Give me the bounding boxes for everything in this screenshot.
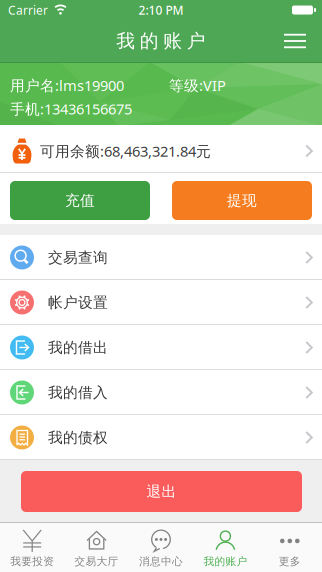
- button[interactable]: 我的债权: [0, 415, 322, 460]
- button[interactable]: 提现: [172, 181, 312, 220]
- staticText: 交易大厅: [75, 555, 119, 568]
- staticText: 充值: [65, 191, 95, 209]
- staticText: 用户名:lms19900: [10, 75, 124, 95]
- staticText: 我要投资: [10, 555, 54, 568]
- button[interactable]: 交易大厅: [64, 529, 129, 568]
- staticText: 我的借入: [48, 383, 108, 401]
- button[interactable]: 可用余额:68,463,321.84元: [0, 125, 322, 173]
- button[interactable]: 交易查询: [0, 235, 322, 280]
- staticText: Carrier: [8, 2, 48, 18]
- button[interactable]: 我的账户: [193, 529, 258, 568]
- button[interactable]: 我的借入: [0, 370, 322, 415]
- staticText: 手机:13436156675: [10, 99, 132, 118]
- button[interactable]: 我要投资: [0, 529, 64, 568]
- staticText: 退出: [146, 482, 176, 500]
- staticText: 我的账户: [116, 29, 206, 52]
- button[interactable]: 充值: [10, 181, 150, 220]
- button[interactable]: 帐户设置: [0, 280, 322, 325]
- staticText: 我的借出: [48, 338, 108, 356]
- button[interactable]: Menu: [284, 34, 322, 48]
- staticText: 我的账户: [203, 555, 247, 568]
- button[interactable]: 退出: [21, 471, 302, 512]
- staticText: 消息中心: [139, 555, 183, 568]
- staticText: 等级:VIP: [169, 75, 226, 95]
- staticText: 更多: [279, 555, 301, 568]
- staticText: 我的债权: [48, 428, 108, 446]
- staticText: 可用余额:68,463,321.84元: [40, 141, 211, 161]
- staticText: 2:10 PM: [138, 2, 183, 18]
- staticText: 交易查询: [48, 248, 108, 266]
- button[interactable]: 消息中心: [129, 529, 193, 568]
- staticText: 帐户设置: [48, 293, 108, 311]
- staticText: 提现: [227, 191, 257, 209]
- button[interactable]: 我的借出: [0, 325, 322, 370]
- button[interactable]: 更多: [258, 529, 322, 568]
